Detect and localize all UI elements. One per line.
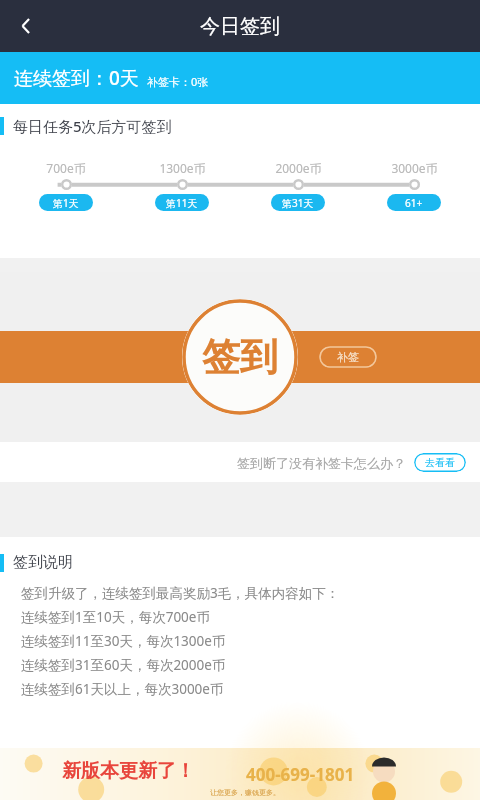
button[interactable]: 第11天 <box>155 194 209 211</box>
staticText: 签到断了没有补签卡怎么办？ <box>237 455 406 471</box>
button[interactable]: 61+ <box>387 194 441 211</box>
staticText: 签到说明 <box>13 553 73 572</box>
staticText: 补签 <box>337 350 359 364</box>
staticText: 700e币 <box>46 160 86 176</box>
button[interactable]: 补签 <box>319 346 377 368</box>
staticText: 签到 <box>202 333 278 381</box>
staticText: 签到升级了，连续签到最高奖励3毛，具体内容如下： <box>21 584 340 602</box>
staticText: 连续签到1至10天，每次700e币 <box>21 608 210 626</box>
button[interactable]: 去看看 <box>414 453 466 472</box>
staticText: 今日签到 <box>200 14 280 39</box>
staticText: 连续签到31至60天，每次2000e币 <box>21 656 226 674</box>
staticText: 连续签到11至30天，每次1300e币 <box>21 632 226 650</box>
staticText: 新版本更新了！ <box>62 759 195 783</box>
staticText: 让您更多，赚钱更多。 <box>210 788 280 797</box>
button[interactable]: Advertisement <box>0 748 480 800</box>
staticText: 补签卡：0张 <box>147 74 209 89</box>
button[interactable]: 签到 <box>182 299 298 415</box>
staticText: 第1天 <box>53 196 79 210</box>
staticText: 第31天 <box>282 196 314 210</box>
button[interactable]: 第1天 <box>39 194 93 211</box>
button[interactable]: 第31天 <box>271 194 325 211</box>
staticText: 400-699-1801 <box>246 763 355 786</box>
staticText: 61+ <box>405 196 423 210</box>
staticText: 去看看 <box>425 456 455 469</box>
staticText: 每日任务5次后方可签到 <box>13 116 172 136</box>
staticText: 1300e币 <box>159 160 206 176</box>
staticText: 第11天 <box>166 196 198 210</box>
staticText: 连续签到61天以上，每次3000e币 <box>21 680 224 698</box>
button[interactable]: Back <box>0 0 52 52</box>
staticText: 2000e币 <box>275 160 322 176</box>
staticText: 3000e币 <box>391 160 438 176</box>
staticText: 连续签到：0天 <box>14 65 139 91</box>
